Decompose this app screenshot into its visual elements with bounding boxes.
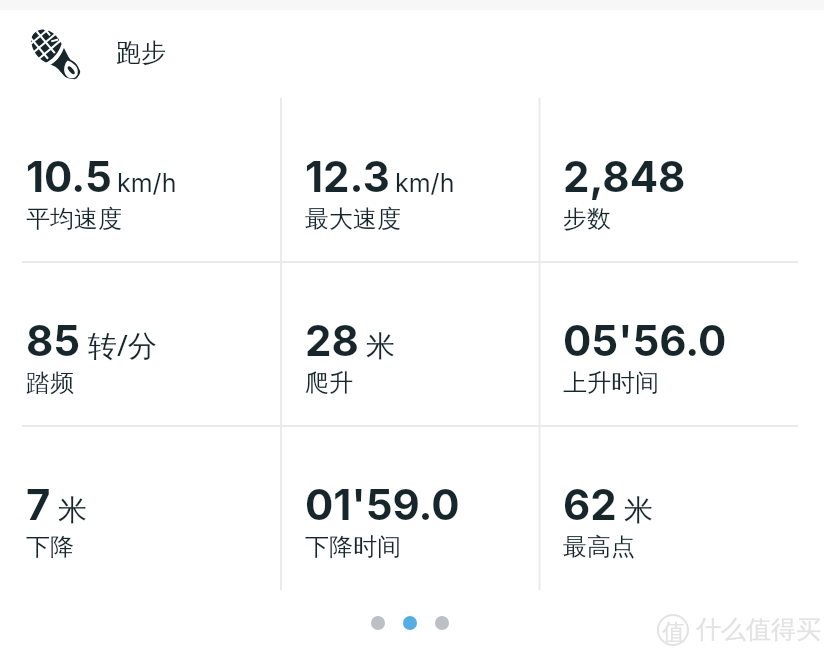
staticText: 05'56.0 [563, 315, 727, 366]
staticText: 12.3 [305, 151, 390, 202]
staticText: 最高点 [563, 532, 635, 562]
staticText: km/h [395, 168, 455, 198]
staticText: 踏频 [26, 368, 74, 398]
button[interactable]: Page 1 [371, 616, 385, 630]
staticText: 米 [624, 492, 653, 529]
button[interactable]: 62 [563, 479, 653, 562]
staticText: 步数 [563, 204, 611, 234]
button[interactable]: Page 2 [403, 616, 417, 630]
staticText: km/h [117, 168, 177, 198]
button[interactable]: Running [22, 24, 166, 88]
staticText: 62 [563, 479, 617, 530]
staticText: 值 [662, 618, 685, 647]
staticText: 什么值得买 [696, 614, 821, 645]
button[interactable]: 85 [26, 315, 157, 398]
staticText: 2,848 [563, 151, 686, 202]
staticText: 上升时间 [563, 368, 659, 398]
staticText: 转/分 [88, 325, 157, 365]
other: Running [22, 24, 88, 88]
staticText: 28 [305, 315, 359, 366]
staticText: 米 [58, 492, 87, 529]
button[interactable]: 01'59.0 [305, 479, 460, 562]
staticText: 米 [366, 328, 395, 365]
button[interactable]: 05'56.0 [563, 315, 727, 398]
staticText: 下降时间 [305, 532, 401, 562]
button[interactable]: 7 [26, 479, 87, 562]
button[interactable]: 10.5 [26, 151, 177, 234]
staticText: 平均速度 [26, 204, 122, 234]
staticText: 85 [26, 315, 81, 366]
staticText: 7 [26, 479, 51, 530]
staticText: 最大速度 [305, 204, 401, 234]
staticText: 10.5 [26, 151, 112, 202]
staticText: 下降 [26, 532, 74, 562]
button[interactable]: 12.3 [305, 151, 455, 234]
staticText: 01'59.0 [305, 479, 460, 530]
button[interactable]: Page 3 [435, 616, 449, 630]
staticText: 跑步 [116, 37, 166, 68]
button[interactable]: 2,848 [563, 151, 686, 234]
button[interactable]: 28 [305, 315, 395, 398]
staticText: 爬升 [305, 368, 353, 398]
